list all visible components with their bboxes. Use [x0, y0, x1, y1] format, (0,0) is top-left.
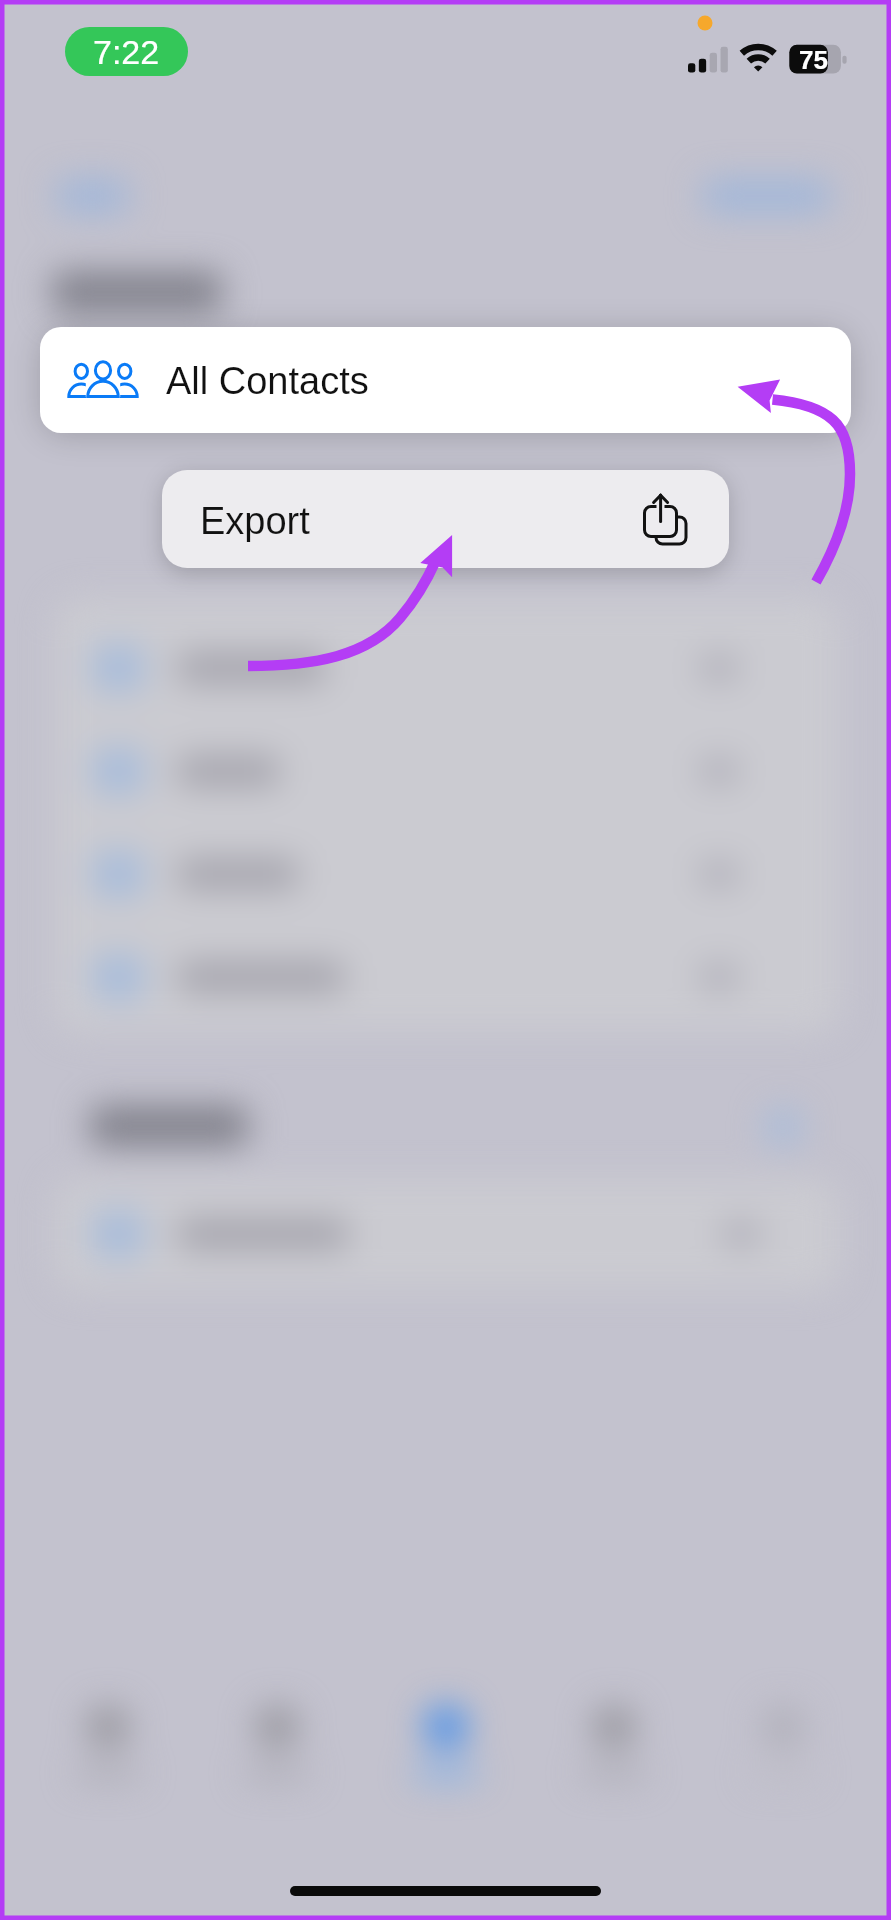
staticText: 7:22: [93, 33, 160, 71]
staticText: 75: [799, 45, 828, 73]
staticText: Export: [200, 500, 310, 542]
button[interactable]: Export: [162, 470, 729, 568]
other: Export: [644, 494, 687, 545]
other: Call timer 7:22: [65, 27, 188, 76]
staticText: All Contacts: [166, 360, 369, 402]
button[interactable]: All Contacts: [40, 327, 851, 433]
